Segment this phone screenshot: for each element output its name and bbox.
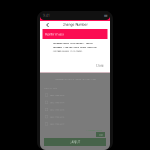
- staticText: Change Number: [62, 22, 87, 27]
- staticText: ▮▮▮: [104, 14, 107, 17]
- staticText: 0812 7789 8176: [50, 115, 64, 118]
- staticText: 0812 7789 8174: [50, 101, 64, 104]
- staticText: 0812 7789 8175: [50, 108, 64, 111]
- staticText: 0812 7789 8173: [50, 93, 64, 97]
- staticText: Close: [96, 63, 104, 67]
- staticText: Perubahan nomor telah berhasil. Restart: [53, 41, 93, 45]
- staticText: + tambah nomor: [86, 128, 102, 132]
- staticText: 9:41: [43, 13, 50, 18]
- staticText: jaringan selesai in 10 menit.: [53, 49, 83, 52]
- staticText: 0812 7789 8177: [50, 122, 64, 126]
- staticText: Oke: [98, 133, 102, 136]
- staticText: UBAH SIM: [44, 86, 57, 90]
- staticText: LANJUT: [69, 140, 80, 144]
- staticText: perangkat Anda dan lanjut proses registr…: [53, 45, 97, 49]
- staticText: Konfirmasi: [45, 31, 64, 37]
- staticText: Masukkan no telp & nomor pilihan Anda: [54, 77, 95, 81]
